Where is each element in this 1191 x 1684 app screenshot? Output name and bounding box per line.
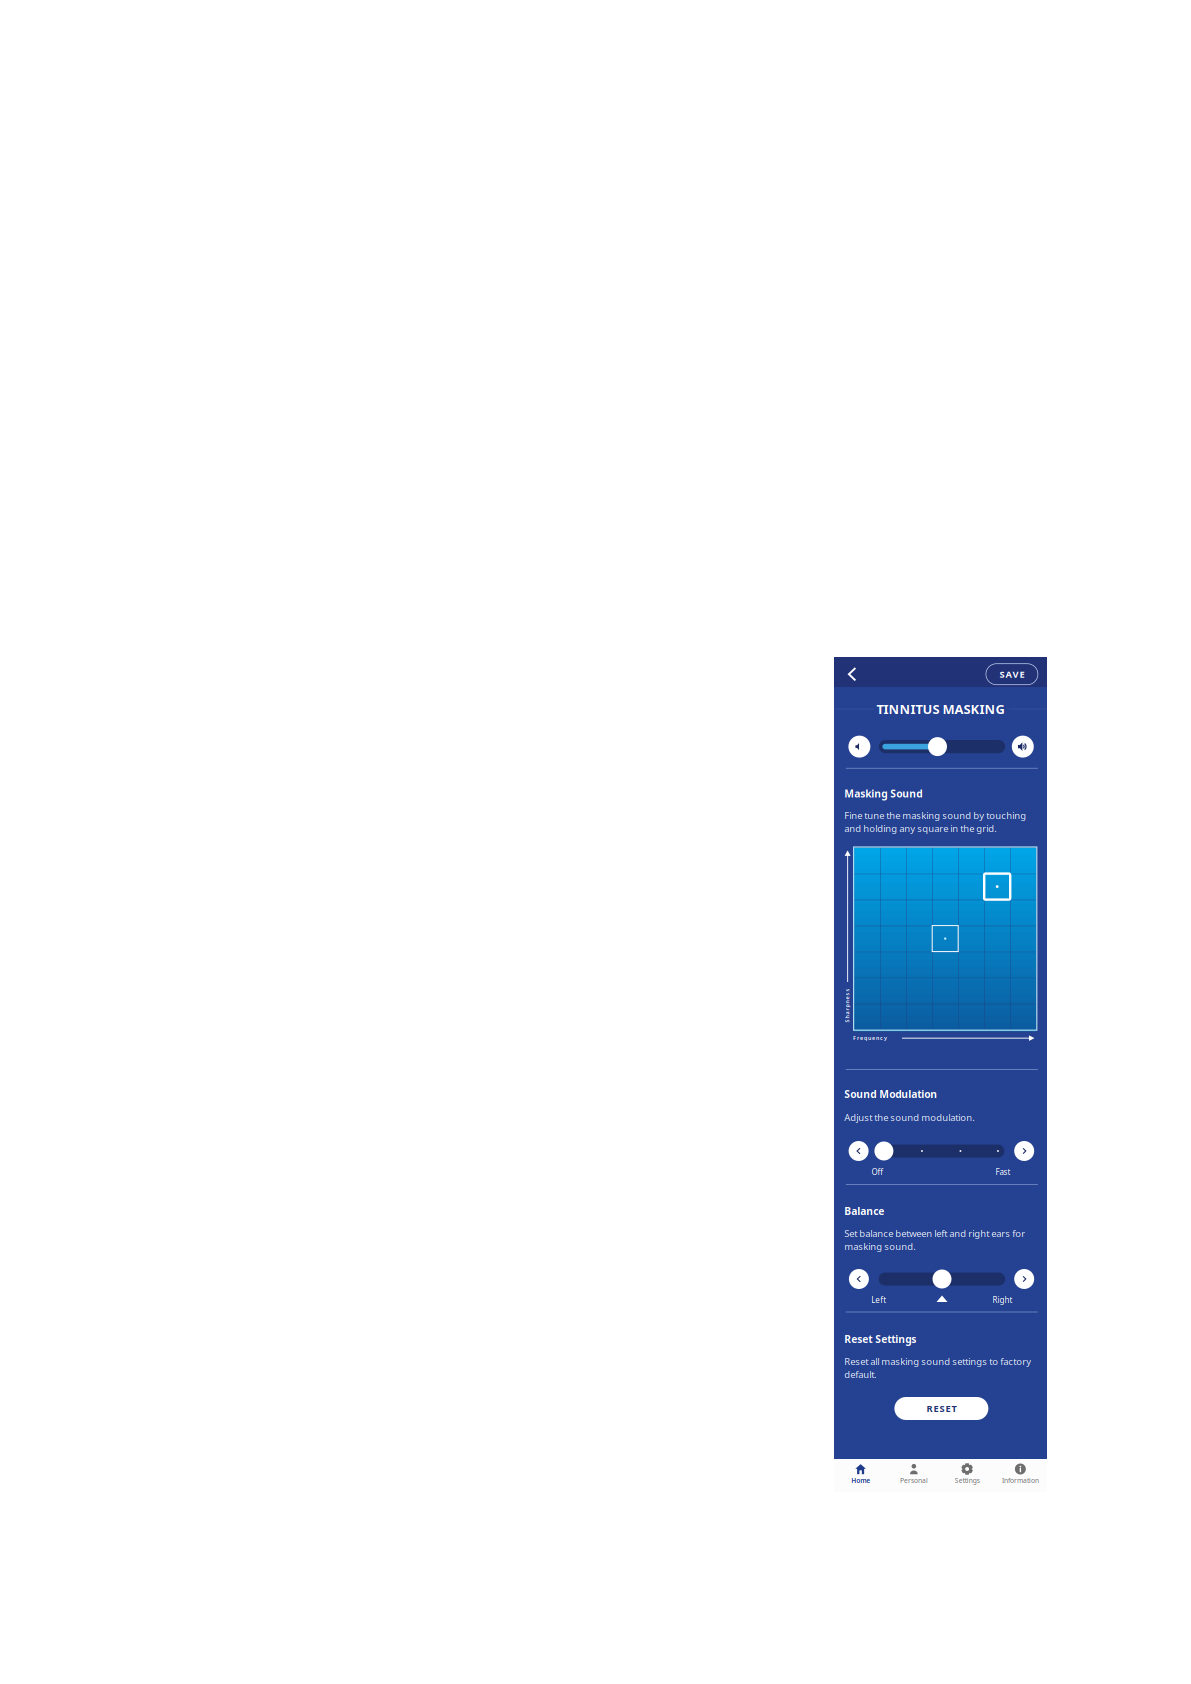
button[interactable]: Mute bbox=[848, 736, 870, 758]
staticText: Reset Settings bbox=[844, 1332, 916, 1346]
staticText: Personal bbox=[900, 1476, 928, 1485]
staticText: Adjust the sound modulation. bbox=[844, 1111, 975, 1124]
staticText: R E S E T bbox=[926, 1402, 956, 1415]
staticText: F r e q u e n c y bbox=[853, 1034, 887, 1042]
staticText: Reset all masking sound settings to fact… bbox=[844, 1355, 1031, 1381]
button[interactable]: Decrease modulation bbox=[849, 1141, 869, 1161]
staticText: Left bbox=[871, 1294, 886, 1305]
button[interactable]: Information bbox=[994, 1459, 1047, 1492]
button[interactable]: Settings bbox=[940, 1459, 994, 1492]
button[interactable]: S A V E bbox=[986, 664, 1038, 685]
staticText: Settings bbox=[955, 1476, 980, 1485]
staticText: Masking Sound bbox=[844, 786, 922, 800]
staticText: Balance bbox=[844, 1204, 884, 1218]
staticText: Home bbox=[851, 1476, 870, 1485]
staticText: Sound Modulation bbox=[844, 1087, 937, 1101]
staticText: S A V E bbox=[999, 668, 1024, 680]
button[interactable]: Personal bbox=[887, 1459, 940, 1492]
staticText: Information bbox=[1002, 1476, 1039, 1485]
button[interactable]: Increase modulation bbox=[1014, 1141, 1034, 1161]
button[interactable]: Back bbox=[839, 661, 865, 687]
staticText: Fast bbox=[995, 1166, 1010, 1177]
button[interactable]: Balance left bbox=[849, 1269, 869, 1289]
button[interactable]: Balance right bbox=[1014, 1269, 1034, 1289]
button[interactable]: Volume up bbox=[1012, 736, 1034, 758]
staticText: TINNITUS MASKING bbox=[876, 700, 1004, 718]
staticText: Off bbox=[871, 1166, 883, 1177]
staticText: Fine tune the masking sound by touching … bbox=[844, 809, 1026, 835]
button[interactable]: Home bbox=[834, 1459, 887, 1492]
staticText: Right bbox=[993, 1294, 1013, 1305]
button[interactable]: R E S E T bbox=[894, 1397, 988, 1420]
staticText: Set balance between left and right ears … bbox=[844, 1227, 1025, 1253]
staticText: S h a r p n e s s bbox=[830, 1002, 864, 1009]
